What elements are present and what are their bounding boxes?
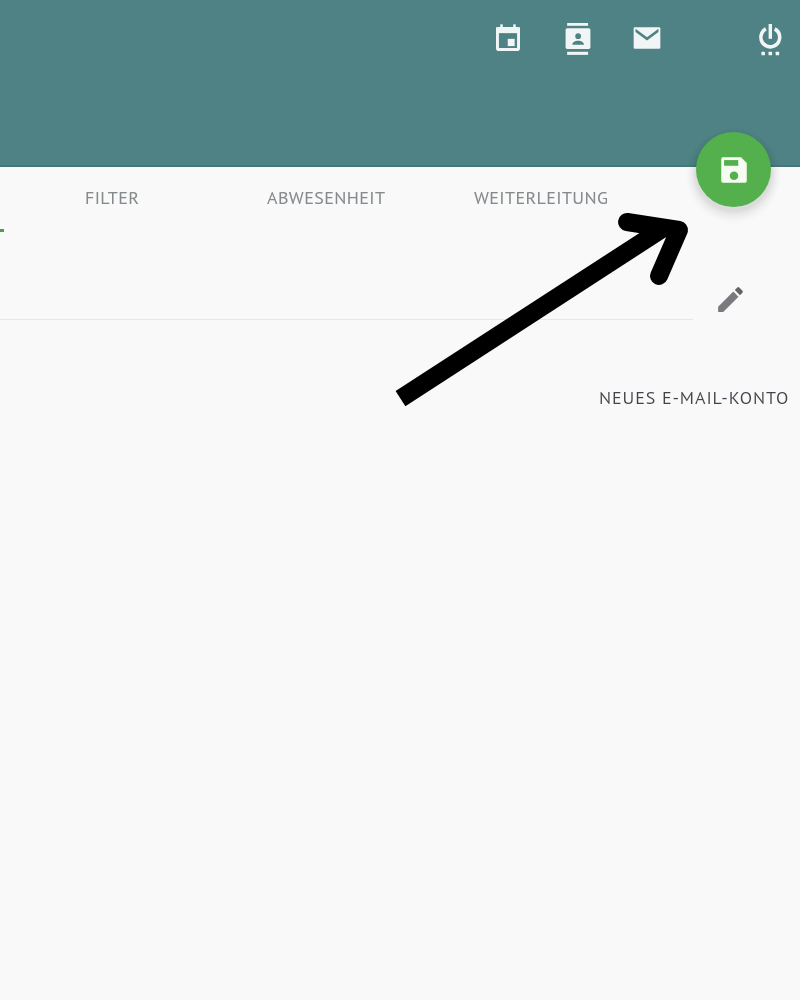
staticText: WEITERLEITUNG	[474, 186, 609, 209]
button[interactable]: ABWESENHEIT	[226, 166, 426, 228]
button[interactable]: Edit signature	[706, 275, 754, 323]
button[interactable]: Mail	[623, 14, 671, 62]
staticText: ABWESENHEIT	[267, 186, 386, 209]
staticText: FILTER	[85, 186, 140, 209]
button[interactable]: Save	[696, 132, 771, 207]
button[interactable]: WEITERLEITUNG	[441, 166, 641, 228]
button[interactable]: Contacts	[554, 15, 602, 63]
button[interactable]: Power and more options	[746, 15, 794, 63]
button[interactable]: NEUES E-MAIL-KONTO	[586, 377, 800, 417]
button[interactable]: Calendar	[484, 15, 532, 63]
button[interactable]: FILTER	[12, 166, 212, 228]
staticText: NEUES E-MAIL-KONTO	[599, 386, 790, 409]
